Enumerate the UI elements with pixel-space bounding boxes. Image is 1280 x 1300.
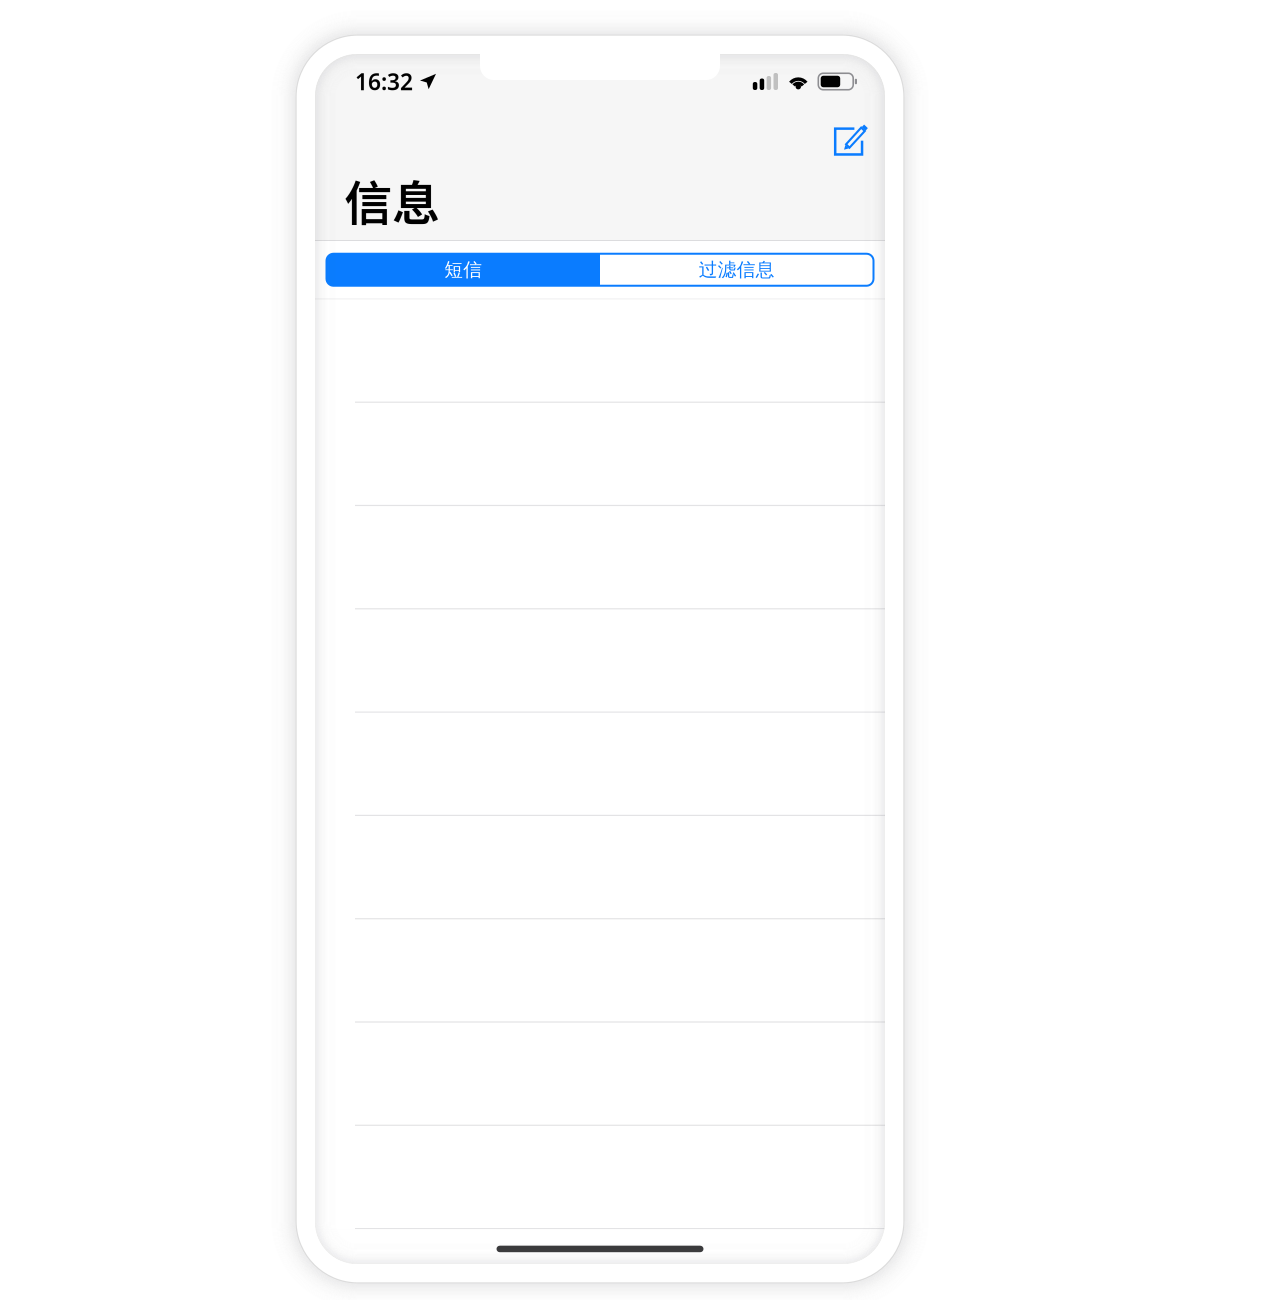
button[interactable]: 过滤信息	[600, 254, 873, 286]
button[interactable]	[315, 816, 885, 919]
button[interactable]	[315, 609, 885, 713]
staticText: 过滤信息	[699, 258, 775, 281]
button[interactable]	[315, 299, 885, 403]
button[interactable]	[315, 919, 885, 1023]
button[interactable]	[315, 713, 885, 816]
button[interactable]: 新建信息	[825, 113, 877, 165]
staticText: 信息	[344, 165, 440, 235]
staticText: 16:32	[355, 66, 413, 96]
staticText: 短信	[444, 258, 482, 281]
button[interactable]	[315, 1126, 885, 1229]
button[interactable]	[315, 1023, 885, 1126]
button[interactable]	[315, 403, 885, 506]
button[interactable]: 短信	[326, 254, 600, 286]
